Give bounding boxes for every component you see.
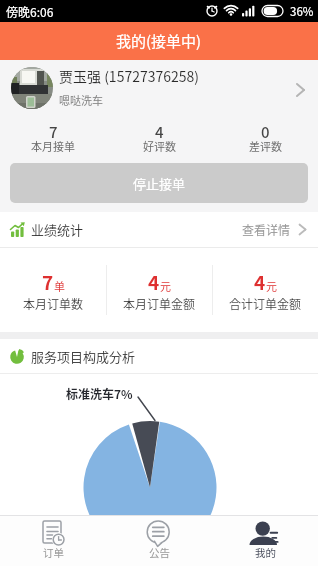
staticText: 本月接单 — [31, 138, 75, 154]
staticText: 我的 — [255, 545, 276, 560]
staticText: 查看详情 — [242, 221, 291, 238]
button[interactable]: 订单 — [0, 516, 106, 566]
staticText: 4 — [148, 268, 160, 296]
button[interactable]: 公告 — [106, 516, 212, 566]
staticText: 合计订单金额 — [229, 295, 302, 312]
staticText: 傍晚6:06 — [6, 3, 54, 20]
button[interactable]: 业绩统计 — [0, 212, 318, 247]
staticText: 嗯哒洗车 — [59, 92, 103, 108]
staticText: 单 — [54, 278, 65, 294]
staticText: 本月订单数 — [23, 295, 84, 312]
staticText: 服务项目构成分析 — [31, 347, 136, 366]
staticText: 0 — [261, 121, 270, 143]
staticText: 公告 — [149, 545, 170, 560]
staticText: 7 — [42, 268, 54, 296]
staticText: 我的(接单中) — [116, 30, 202, 52]
staticText: 标准洗车7% — [66, 385, 133, 402]
button[interactable]: 停止接单 — [10, 163, 308, 203]
staticText: 贾玉强 (15727376258) — [59, 66, 200, 86]
staticText: 好评数 — [143, 138, 176, 154]
staticText: 元 — [160, 278, 171, 294]
staticText: 停止接单 — [133, 174, 186, 193]
staticText: 元 — [266, 278, 277, 294]
staticText: 差评数 — [249, 138, 282, 154]
button[interactable]: 我的 — [212, 516, 318, 566]
button[interactable]: 贾玉强 (15727376258) — [0, 60, 318, 120]
staticText: 订单 — [43, 545, 64, 560]
staticText: 业绩统计 — [31, 220, 84, 239]
staticText: 7 — [49, 121, 58, 143]
staticText: 4 — [254, 268, 266, 296]
staticText: 4 — [155, 121, 164, 143]
staticText: 36% — [290, 3, 314, 20]
staticText: 本月订单金额 — [123, 295, 196, 312]
